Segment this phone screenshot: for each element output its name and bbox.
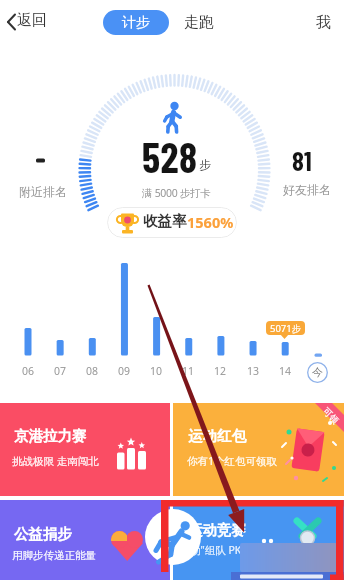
button[interactable]: 运动红包 [173, 403, 344, 496]
staticText: 公益捐步 [14, 525, 72, 543]
staticText: 走跑 [184, 13, 214, 32]
staticText: 你有1个红包可领取 [187, 454, 278, 468]
button[interactable]: 收益率 [107, 207, 237, 238]
button[interactable]: 我 [306, 6, 340, 38]
staticText: 今 [312, 365, 323, 379]
staticText: 用脚步传递正能量 [12, 549, 96, 562]
button[interactable]: 公益捐步 [0, 500, 170, 580]
staticText: 14 [279, 364, 292, 378]
staticText: 12 [214, 364, 227, 378]
staticText: 好友排名 [283, 182, 331, 197]
staticText: 528 [142, 132, 198, 181]
staticText: 运动红包 [188, 427, 246, 445]
staticText: 动"组队 PK [190, 543, 242, 557]
button[interactable] [0, 4, 70, 40]
staticText: 京港拉力赛 [14, 427, 87, 445]
staticText: 收益率 [143, 212, 187, 230]
staticText: 81 [292, 144, 313, 176]
staticText: 07 [54, 364, 67, 378]
staticText: 运动竞赛 [188, 521, 246, 539]
button[interactable]: 运动竞赛 [173, 500, 344, 580]
button[interactable]: 京港拉力赛 [0, 403, 170, 496]
staticText: 附近排名 [19, 184, 67, 199]
staticText: 返回 [17, 11, 47, 30]
staticText: 我 [316, 13, 331, 32]
staticText: 计步 [122, 14, 150, 32]
staticText: 09 [118, 364, 131, 378]
button[interactable]: 走跑 [176, 6, 222, 38]
staticText: 06 [22, 364, 35, 378]
staticText: 08 [86, 364, 99, 378]
staticText: 5071步 [270, 322, 302, 335]
staticText: 1560% [187, 212, 234, 232]
staticText: 挑战极限 走南闯北 [12, 454, 99, 468]
staticText: 满 5000 步打卡 [142, 186, 211, 200]
staticText: 13 [247, 364, 260, 378]
staticText: 可领 [321, 405, 341, 426]
staticText: 步 [199, 157, 211, 172]
button[interactable]: 计步 [103, 10, 169, 35]
staticText: 10 [150, 364, 163, 378]
staticText: 11 [182, 364, 195, 378]
